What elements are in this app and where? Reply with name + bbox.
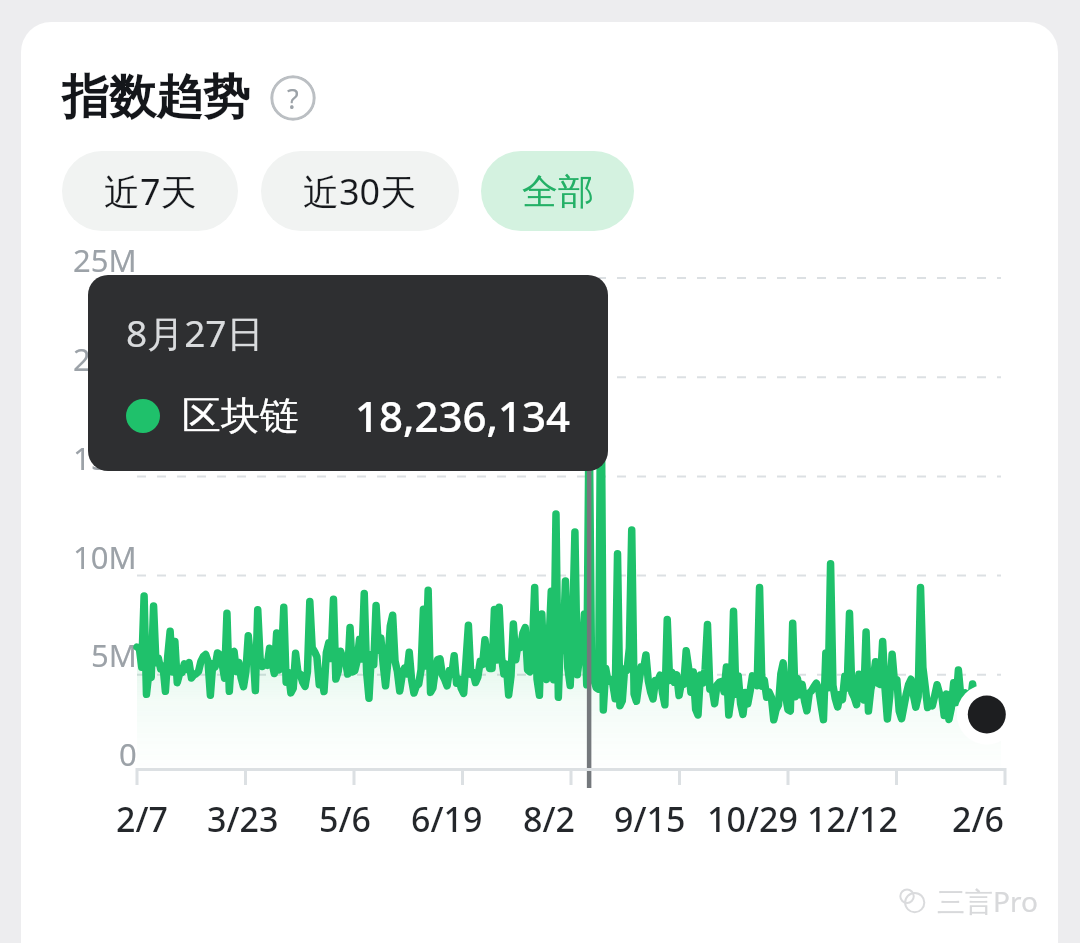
staticText: 指数趋势 — [62, 68, 250, 127]
staticText: 近30天 — [303, 167, 417, 216]
staticText: 5/6 — [319, 796, 371, 842]
staticText: ? — [287, 80, 299, 117]
button[interactable]: 近7天 — [62, 151, 238, 231]
staticText: 15M — [73, 437, 137, 479]
staticText: 10M — [73, 536, 137, 578]
staticText: 全部 — [522, 169, 594, 214]
staticText: 18,236,134 — [355, 387, 571, 444]
staticText: 近7天 — [104, 167, 197, 216]
button[interactable]: 近30天 — [261, 151, 459, 231]
staticText: 2/6 — [952, 796, 1004, 842]
staticText: 三言Pro — [937, 882, 1038, 920]
button[interactable]: 全部 — [481, 151, 634, 231]
staticText: 6/19 — [411, 796, 483, 842]
staticText: 5M — [91, 634, 137, 676]
staticText: 0 — [119, 733, 137, 775]
staticText: 9/15 — [614, 796, 686, 842]
staticText: 10/29 — [707, 796, 798, 842]
staticText: 20M — [73, 338, 137, 380]
staticText: 25M — [73, 239, 137, 281]
staticText: 区块链 — [182, 391, 299, 440]
button[interactable]: Help — [270, 75, 316, 121]
staticText: 12/12 — [807, 796, 898, 842]
staticText: 8/2 — [523, 796, 575, 842]
staticText: 3/23 — [207, 796, 279, 842]
staticText: 8月27日 — [126, 307, 264, 358]
staticText: 2/7 — [116, 796, 168, 842]
button[interactable]: Data tooltip — [88, 275, 608, 471]
